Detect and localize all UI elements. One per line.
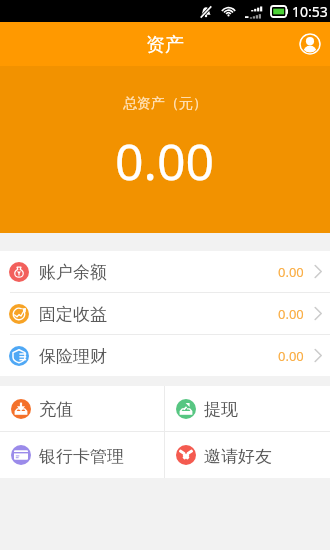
staticText: 固定收益 bbox=[39, 304, 107, 325]
button[interactable]: 提现 bbox=[165, 386, 330, 431]
button[interactable]: Profile bbox=[299, 33, 321, 55]
staticText: 充值 bbox=[39, 399, 73, 420]
staticText: 总资产（元） bbox=[123, 95, 207, 113]
staticText: 0.00 bbox=[278, 347, 304, 365]
staticText: 邀请好友 bbox=[204, 446, 272, 467]
button[interactable]: 邀请好友 bbox=[165, 432, 330, 478]
staticText: 提现 bbox=[204, 399, 238, 420]
staticText: 银行卡管理 bbox=[39, 446, 124, 467]
staticText: 0.00 bbox=[115, 127, 215, 195]
button[interactable]: 充值 bbox=[0, 386, 164, 431]
staticText: 资产 bbox=[146, 33, 184, 57]
staticText: 保险理财 bbox=[39, 346, 107, 367]
button[interactable]: 保险理财 bbox=[0, 335, 330, 376]
staticText: 10:53 bbox=[292, 2, 328, 21]
staticText: 0.00 bbox=[278, 305, 304, 323]
button[interactable]: 账户余额 bbox=[0, 251, 330, 292]
button[interactable]: 固定收益 bbox=[0, 293, 330, 334]
button[interactable]: 银行卡管理 bbox=[0, 432, 164, 478]
staticText: 0.00 bbox=[278, 263, 304, 281]
staticText: 账户余额 bbox=[39, 262, 107, 283]
